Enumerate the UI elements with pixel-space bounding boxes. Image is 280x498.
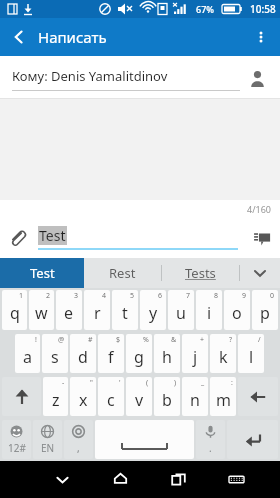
button[interactable]: 1 bbox=[2, 290, 27, 330]
button[interactable]: ' bbox=[98, 377, 124, 416]
button[interactable]: 4 bbox=[84, 290, 110, 330]
button[interactable]: Send bbox=[244, 220, 280, 256]
button[interactable]: Attach bbox=[0, 221, 34, 255]
staticText: z bbox=[52, 389, 60, 411]
staticText: 12# bbox=[8, 441, 26, 455]
staticText: 9 bbox=[242, 291, 247, 301]
button[interactable]: ( bbox=[126, 377, 152, 416]
button[interactable]: , bbox=[64, 420, 93, 459]
staticText: i bbox=[207, 302, 212, 324]
staticText: q bbox=[10, 302, 20, 324]
staticText: . bbox=[209, 441, 212, 455]
staticText: h bbox=[162, 346, 172, 368]
staticText: g bbox=[134, 346, 144, 368]
button[interactable]: Rest bbox=[84, 258, 161, 288]
staticText: : bbox=[231, 378, 233, 388]
button[interactable]: / bbox=[238, 334, 264, 373]
staticText: 67% bbox=[196, 3, 214, 15]
staticText: f bbox=[108, 346, 114, 368]
button[interactable]: Switch keyboard bbox=[207, 461, 265, 498]
button[interactable]: . bbox=[196, 420, 225, 459]
staticText: 6 bbox=[158, 291, 163, 301]
staticText: m bbox=[216, 389, 231, 411]
staticText: r bbox=[94, 302, 101, 324]
staticText: j bbox=[193, 346, 198, 368]
button[interactable]: ) bbox=[154, 377, 180, 416]
staticText: ) bbox=[174, 378, 177, 388]
button[interactable]: 9 bbox=[224, 290, 250, 330]
staticText: e bbox=[64, 302, 74, 324]
button[interactable]: : bbox=[210, 377, 236, 416]
staticText: Rest bbox=[109, 264, 136, 282]
button[interactable]: 2 bbox=[29, 290, 54, 330]
staticText: ! bbox=[35, 335, 37, 345]
staticText: 8 bbox=[214, 291, 219, 301]
staticText: t bbox=[122, 302, 128, 324]
button[interactable]: 6 bbox=[140, 290, 166, 330]
button[interactable]: + bbox=[182, 334, 208, 373]
staticText: & bbox=[171, 335, 177, 345]
button[interactable]: EN bbox=[33, 420, 62, 459]
button[interactable]: Hide keyboard bbox=[33, 461, 91, 498]
staticText: s bbox=[51, 346, 59, 368]
staticText: % bbox=[143, 335, 149, 345]
staticText: 3 bbox=[74, 291, 79, 301]
button[interactable]: Test bbox=[0, 258, 84, 288]
staticText: EN bbox=[41, 441, 55, 455]
staticText: , bbox=[77, 441, 80, 455]
button[interactable]: ! bbox=[15, 334, 40, 373]
button[interactable]: Expand suggestions bbox=[240, 258, 280, 288]
staticText: _ bbox=[201, 378, 205, 388]
button[interactable]: # bbox=[70, 334, 96, 373]
staticText: b bbox=[162, 389, 172, 411]
staticText: Test bbox=[30, 264, 55, 282]
staticText: p bbox=[260, 302, 270, 324]
staticText: a bbox=[23, 346, 32, 368]
button[interactable]: " bbox=[70, 377, 96, 416]
button[interactable]: 12# bbox=[2, 420, 31, 459]
button[interactable]: ? bbox=[210, 334, 236, 373]
button[interactable]: - bbox=[43, 377, 68, 416]
staticText: c bbox=[107, 389, 115, 411]
button[interactable]: 5 bbox=[112, 290, 138, 330]
staticText: Кому: Denis Yamalitdinov bbox=[12, 67, 168, 85]
staticText: 7 bbox=[186, 291, 191, 301]
staticText: 2 bbox=[46, 291, 51, 301]
staticText: n bbox=[190, 389, 200, 411]
button[interactable]: 8 bbox=[196, 290, 222, 330]
staticText: ' bbox=[119, 378, 121, 388]
button[interactable]: More options bbox=[242, 18, 280, 56]
button[interactable]: Choose contact bbox=[240, 61, 274, 95]
staticText: y bbox=[149, 302, 158, 324]
staticText: w bbox=[35, 302, 48, 324]
staticText: Написать bbox=[38, 27, 107, 47]
staticText: 5 bbox=[130, 291, 135, 301]
button[interactable]: $ bbox=[98, 334, 124, 373]
button[interactable]: Shift bbox=[2, 377, 41, 416]
button[interactable]: Home bbox=[91, 461, 149, 498]
button[interactable]: Backspace bbox=[238, 377, 278, 416]
staticText: 1 bbox=[19, 291, 24, 301]
staticText: / bbox=[258, 335, 261, 345]
staticText: " bbox=[90, 378, 93, 388]
button[interactable]: 3 bbox=[56, 290, 82, 330]
button[interactable]: _ bbox=[182, 377, 208, 416]
button[interactable]: Space bbox=[95, 420, 194, 459]
button[interactable]: Enter bbox=[227, 420, 278, 459]
staticText: u bbox=[176, 302, 186, 324]
staticText: 4/160 bbox=[247, 203, 271, 215]
button[interactable]: % bbox=[126, 334, 152, 373]
staticText: + bbox=[200, 335, 205, 345]
button[interactable]: Back bbox=[0, 18, 38, 56]
button[interactable]: & bbox=[154, 334, 180, 373]
staticText: Tests bbox=[185, 264, 216, 282]
button[interactable]: Recent apps bbox=[149, 461, 207, 498]
button[interactable]: 7 bbox=[168, 290, 194, 330]
button[interactable]: Tests bbox=[162, 258, 239, 288]
staticText: d bbox=[78, 346, 88, 368]
staticText: v bbox=[135, 389, 144, 411]
staticText: - bbox=[62, 378, 65, 388]
button[interactable]: 0 bbox=[252, 290, 278, 330]
button[interactable]: @ bbox=[42, 334, 68, 373]
staticText: ( bbox=[146, 378, 149, 388]
